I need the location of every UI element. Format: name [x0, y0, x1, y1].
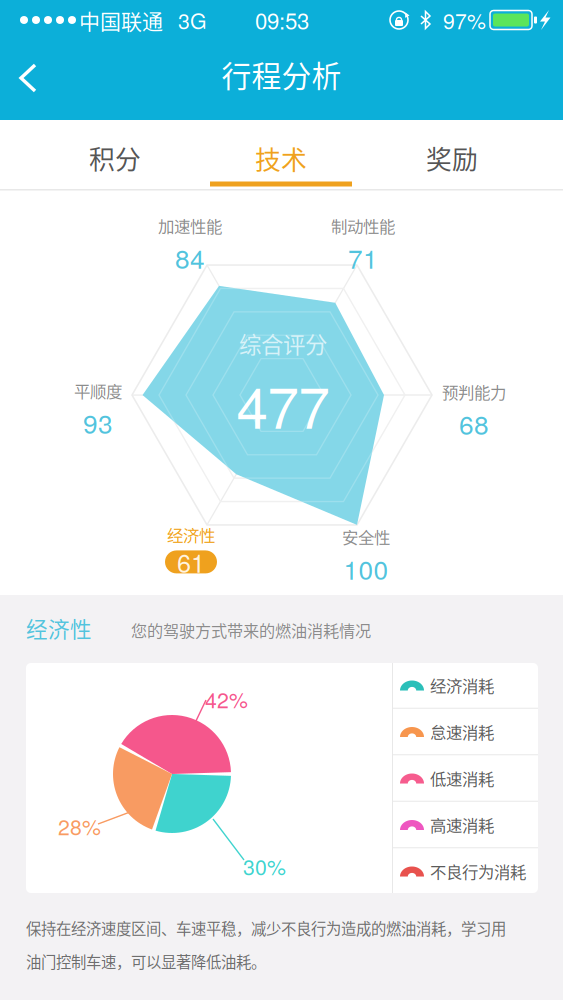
button[interactable]: 积分: [30, 123, 200, 192]
staticText: 93: [83, 404, 113, 441]
staticText: 68: [459, 405, 489, 442]
staticText: 61: [177, 544, 205, 580]
staticText: 油门控制车速，可以显著降低油耗。: [26, 950, 266, 972]
staticText: 97%: [443, 5, 486, 35]
staticText: 3G: [178, 5, 207, 35]
staticText: 42%: [205, 684, 248, 714]
staticText: 怠速消耗: [430, 720, 494, 743]
staticText: 经济性: [167, 523, 215, 546]
staticText: 高速消耗: [430, 813, 494, 836]
staticText: 预判能力: [442, 380, 506, 404]
staticText: 加速性能: [158, 214, 222, 238]
button[interactable]: Back: [9, 58, 65, 112]
staticText: 制动性能: [331, 214, 395, 238]
staticText: 技术: [255, 140, 307, 177]
staticText: 安全性: [342, 525, 390, 549]
staticText: 保持在经济速度区间、车速平稳，减少不良行为造成的燃油消耗，学习用: [26, 917, 506, 939]
button[interactable]: 技术: [196, 115, 366, 194]
staticText: 积分: [89, 139, 141, 177]
staticText: 综合评分: [239, 327, 327, 360]
staticText: 30%: [243, 851, 286, 881]
staticText: 477: [236, 364, 329, 445]
staticText: 不良行为消耗: [430, 859, 526, 883]
staticText: 中国联通: [79, 5, 163, 35]
staticText: 09:53: [255, 4, 309, 36]
button[interactable]: 奖励: [367, 123, 537, 192]
staticText: 28%: [58, 811, 101, 841]
staticText: 您的驾驶方式带来的燃油消耗情况: [131, 618, 371, 642]
staticText: 奖励: [426, 139, 478, 177]
staticText: 经济消耗: [430, 673, 494, 697]
staticText: 经济性: [26, 612, 92, 644]
staticText: 行程分析: [221, 52, 341, 95]
staticText: 低速消耗: [430, 766, 494, 790]
staticText: 平顺度: [74, 379, 122, 403]
staticText: 71: [348, 239, 378, 276]
staticText: 100: [343, 550, 388, 587]
staticText: 84: [175, 239, 205, 276]
